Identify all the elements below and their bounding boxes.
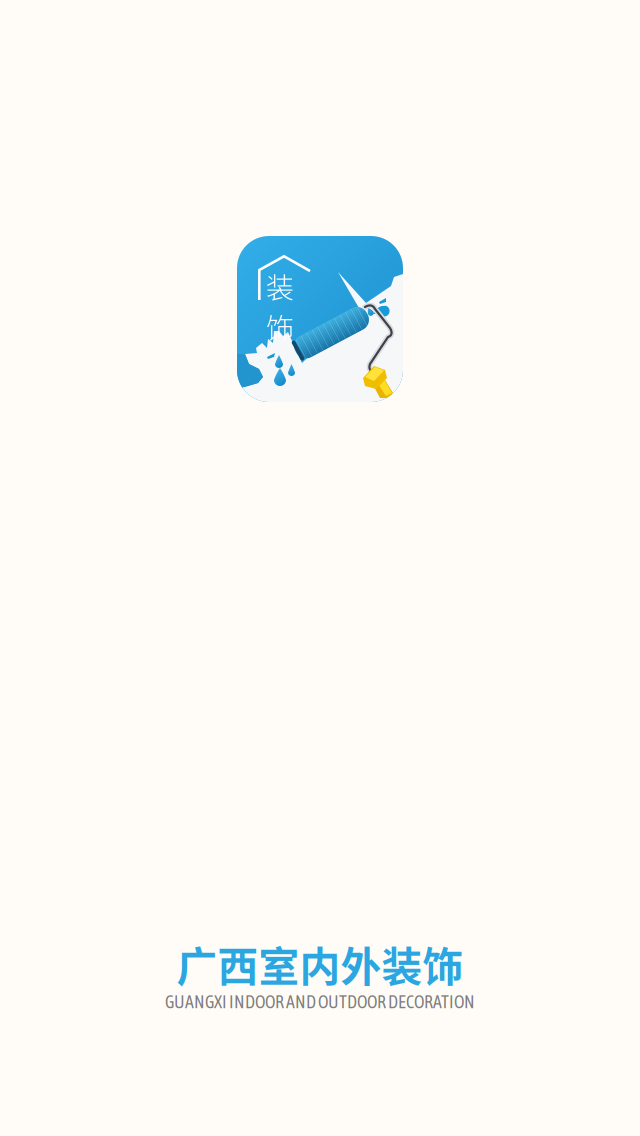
staticText: 装 饰 <box>266 266 294 347</box>
staticText: GUANGXI INDOOR AND OUTDOOR DECORATION <box>165 991 475 1012</box>
staticText: 广西室内外装饰 <box>176 935 463 993</box>
